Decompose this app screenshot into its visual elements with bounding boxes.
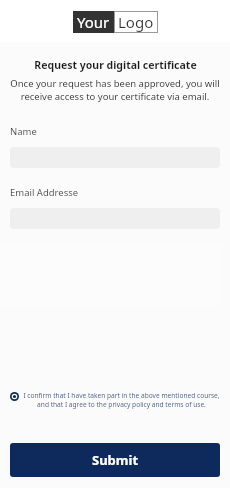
button[interactable]: Confirm checkbox, selected bbox=[10, 391, 220, 409]
button[interactable]: Your Logo bbox=[73, 11, 158, 33]
staticText: Your bbox=[77, 12, 110, 32]
staticText: Submit bbox=[92, 451, 139, 469]
button[interactable]: Submit bbox=[10, 443, 220, 477]
staticText: Name bbox=[10, 125, 37, 138]
staticText: I confirm that I have taken part in the … bbox=[23, 391, 220, 409]
staticText: Once your request has been approved, you… bbox=[8, 77, 222, 103]
staticText: Email Addresse bbox=[10, 186, 79, 199]
staticText: Request your digital certificate bbox=[34, 58, 197, 72]
other: Confirm checkbox, selected bbox=[10, 392, 19, 401]
staticText: Logo bbox=[118, 12, 154, 32]
